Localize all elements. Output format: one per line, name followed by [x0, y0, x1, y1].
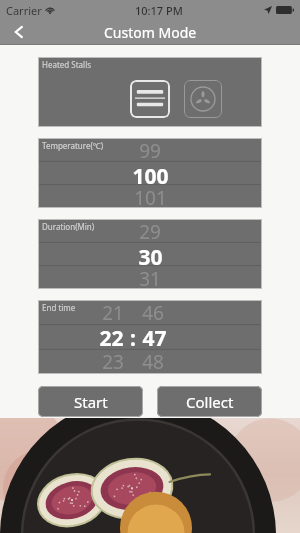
- staticText: 99: [139, 138, 161, 162]
- staticText: Start: [74, 392, 108, 412]
- staticText: End time: [42, 302, 76, 313]
- staticText: Temperature(℃): [42, 140, 104, 151]
- staticText: Collect: [186, 392, 234, 412]
- button[interactable]: Back: [4, 20, 34, 44]
- staticText: 100: [132, 162, 169, 185]
- staticText: :: [130, 324, 136, 349]
- button[interactable]: Heating element: [130, 80, 170, 118]
- staticText: 31: [139, 266, 161, 289]
- staticText: Duration(Min): [42, 221, 95, 232]
- button[interactable]: Collect: [157, 386, 262, 417]
- staticText: 47: [142, 324, 167, 349]
- button[interactable]: Fan: [184, 80, 222, 118]
- staticText: Heated Stalls: [42, 59, 92, 70]
- staticText: 29: [139, 219, 161, 243]
- staticText: 10:17 PM: [135, 3, 183, 18]
- staticText: 101: [134, 185, 167, 208]
- staticText: Carrier: [6, 3, 42, 18]
- staticText: 23: [102, 349, 124, 374]
- button[interactable]: Start: [38, 386, 143, 417]
- staticText: 30: [138, 243, 163, 266]
- staticText: 46: [142, 300, 164, 324]
- staticText: 22: [99, 324, 124, 349]
- staticText: Custom Mode: [104, 23, 197, 42]
- staticText: 48: [142, 349, 164, 374]
- staticText: 21: [102, 300, 124, 324]
